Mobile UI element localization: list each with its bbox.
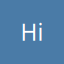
staticText: Hi bbox=[20, 17, 43, 47]
